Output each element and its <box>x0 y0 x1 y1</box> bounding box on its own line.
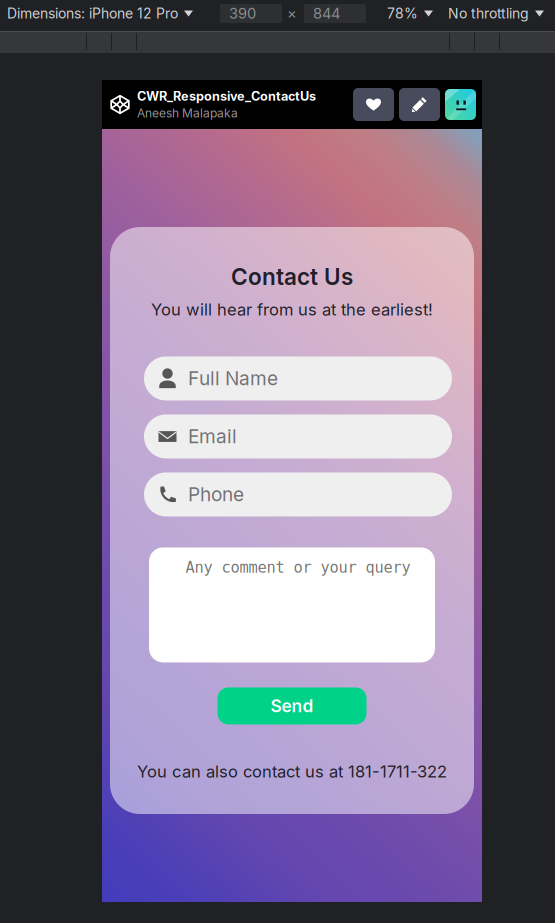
button[interactable]: Edit <box>399 88 440 121</box>
staticText: You will hear from us at the earliest! <box>151 299 433 319</box>
button[interactable]: Phone <box>138 472 446 516</box>
button[interactable]: Profile <box>445 89 476 120</box>
button[interactable]: Love <box>353 88 394 121</box>
staticText: Contact Us <box>231 263 353 290</box>
button[interactable]: No throttling <box>443 1 555 26</box>
staticText: Dimensions: iPhone 12 Pro <box>7 5 178 22</box>
staticText: No throttling <box>448 5 529 22</box>
staticText: 844 <box>313 5 340 22</box>
button[interactable]: Email <box>138 414 446 458</box>
button[interactable]: 844 <box>304 4 366 23</box>
staticText: Any comment or your query <box>185 558 410 576</box>
button[interactable]: 78% <box>382 1 440 26</box>
button[interactable]: Send <box>217 687 366 724</box>
staticText: × <box>287 5 297 22</box>
staticText: Aneesh Malapaka <box>137 106 238 120</box>
staticText: You can also contact us at 181-1711-322 <box>137 761 447 781</box>
staticText: CWR_Responsive_ContactUs <box>137 89 316 104</box>
staticText: Send <box>270 695 313 716</box>
staticText: Phone <box>188 483 244 506</box>
button[interactable]: Any comment or your query <box>149 547 435 662</box>
staticText: 390 <box>229 5 256 22</box>
staticText: Full Name <box>188 367 278 390</box>
staticText: Email <box>188 425 237 448</box>
button[interactable]: Full Name <box>138 356 446 400</box>
button[interactable]: 390 <box>220 4 282 23</box>
button[interactable]: Dimensions: iPhone 12 Pro <box>2 1 201 26</box>
staticText: 78% <box>387 5 418 22</box>
